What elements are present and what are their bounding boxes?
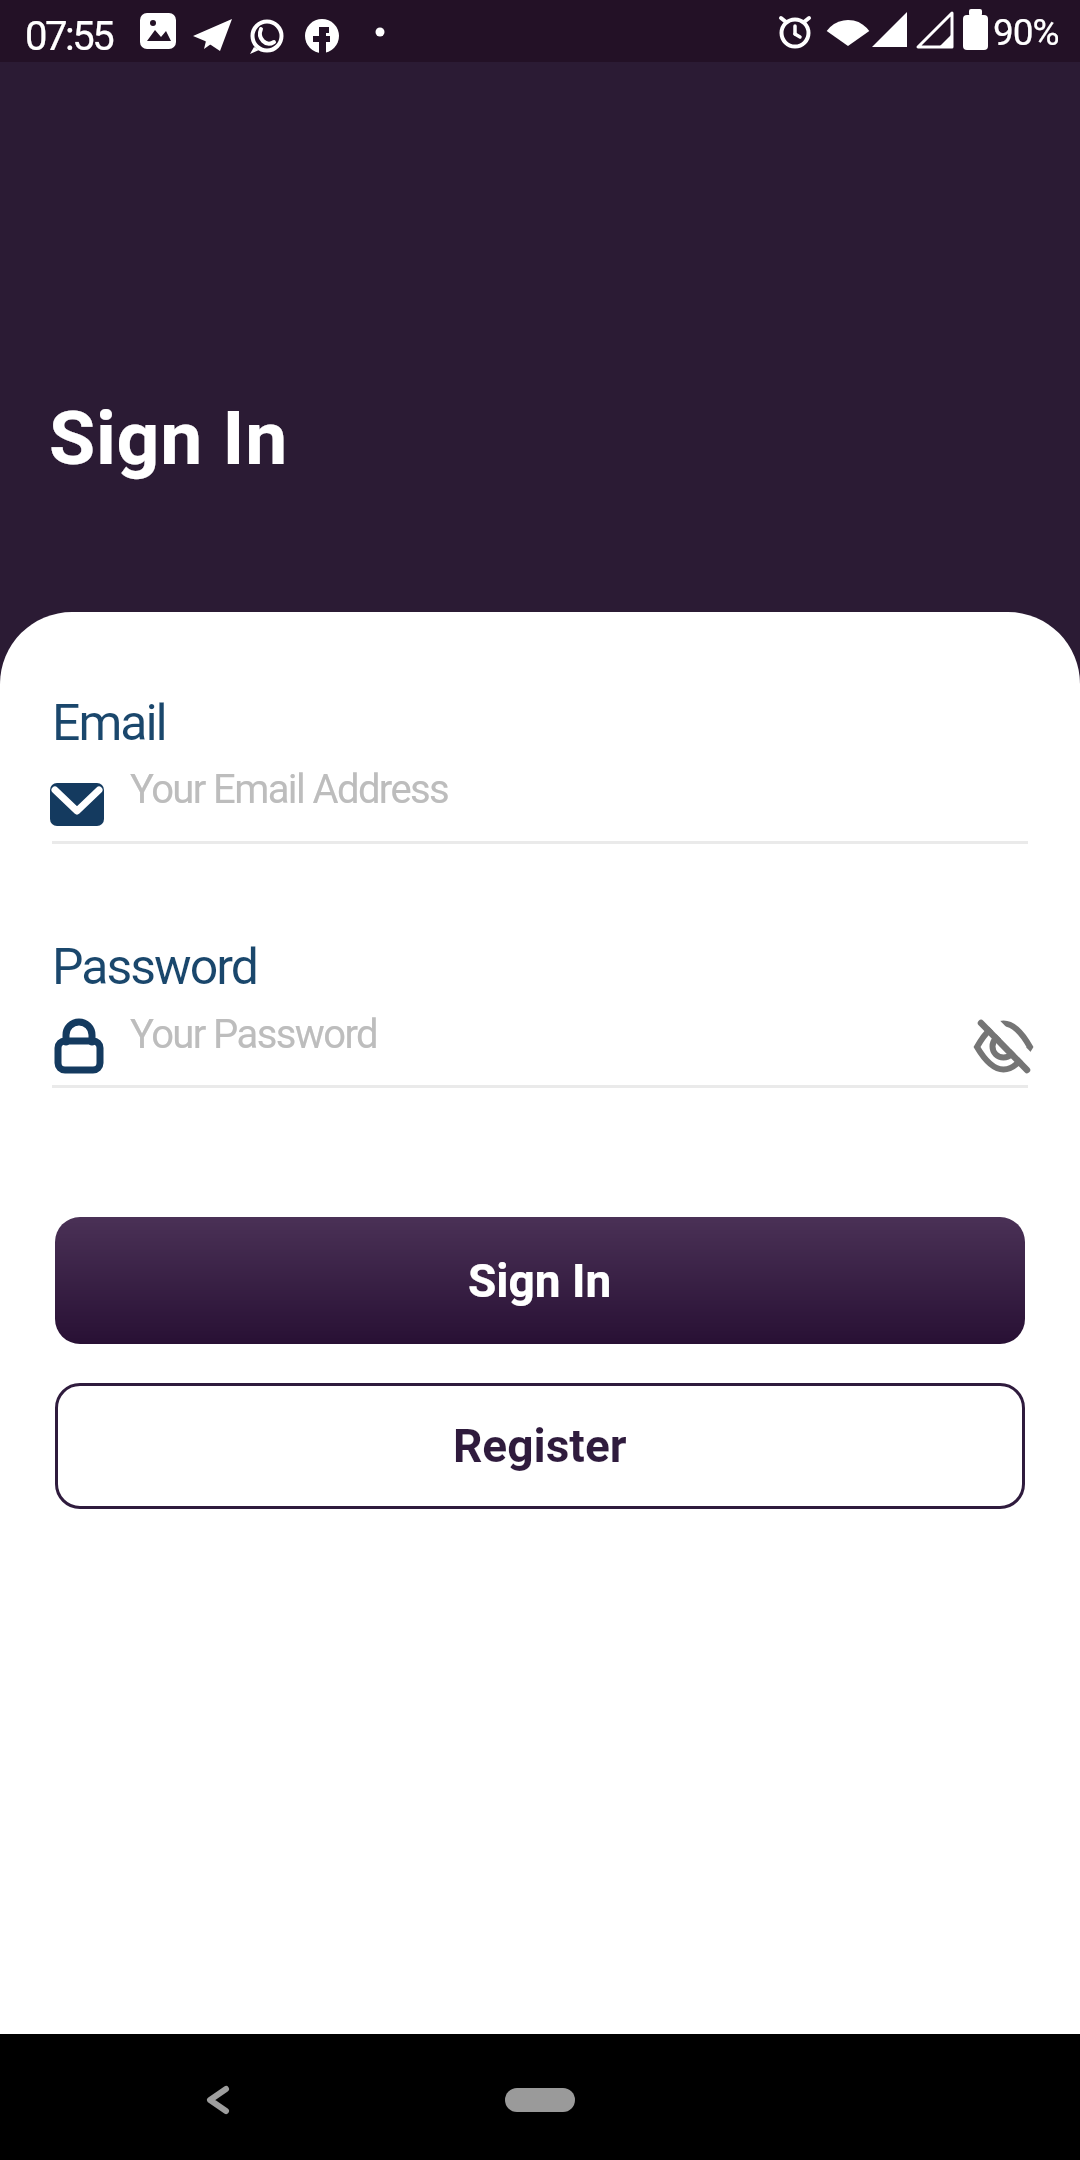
staticText: 90% xyxy=(993,11,1059,54)
button[interactable]: Register xyxy=(55,1383,1025,1509)
staticText: Email xyxy=(52,694,166,753)
staticText: Your Password xyxy=(130,1011,377,1058)
button[interactable]: Sign In xyxy=(55,1217,1025,1344)
staticText: Register xyxy=(453,1419,627,1473)
staticText: Password xyxy=(52,938,257,997)
staticText: Sign In xyxy=(49,394,289,482)
button[interactable]: Your Password xyxy=(50,1004,1028,1088)
button[interactable] xyxy=(190,2080,246,2136)
button[interactable] xyxy=(968,1012,1040,1084)
staticText: Sign In xyxy=(468,1254,612,1308)
staticText: 07:55 xyxy=(25,13,113,60)
staticText: Your Email Address xyxy=(130,766,449,813)
button[interactable]: Your Email Address xyxy=(50,760,1028,844)
